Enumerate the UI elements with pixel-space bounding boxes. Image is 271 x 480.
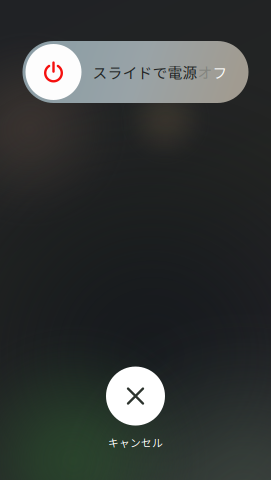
button[interactable]: キャンセル — [106, 367, 165, 450]
staticText: キャンセル — [108, 435, 163, 450]
button[interactable]: スライドで電源 — [22, 41, 248, 103]
staticText: フ — [212, 61, 227, 83]
staticText: オ — [197, 61, 212, 83]
staticText: スライドで電源 — [92, 61, 197, 83]
